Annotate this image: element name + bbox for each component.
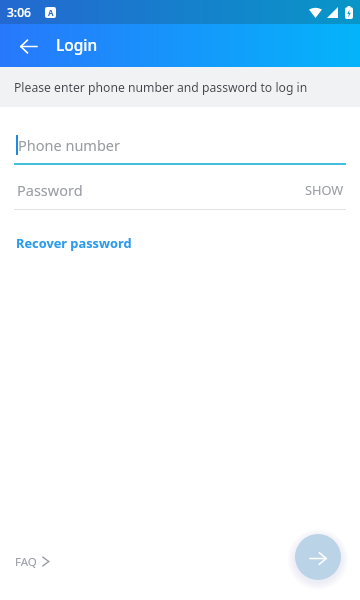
button[interactable]: Back: [8, 26, 48, 66]
button[interactable]: FAQ: [15, 552, 50, 571]
button[interactable]: Continue: [295, 534, 341, 580]
staticText: Password: [17, 180, 83, 198]
staticText: SHOW: [305, 181, 344, 198]
staticText: FAQ: [15, 554, 37, 570]
staticText: A: [48, 7, 54, 18]
staticText: 3:06: [7, 4, 31, 20]
button[interactable]: Password: [0, 180, 360, 198]
button[interactable]: Phone number: [0, 134, 360, 155]
staticText: Please enter phone number and password t…: [14, 79, 308, 96]
staticText: Recover password: [16, 234, 132, 251]
button[interactable]: Recover password: [16, 234, 132, 251]
button[interactable]: SHOW: [305, 181, 344, 198]
staticText: Login: [56, 34, 98, 55]
staticText: Phone number: [18, 135, 120, 155]
